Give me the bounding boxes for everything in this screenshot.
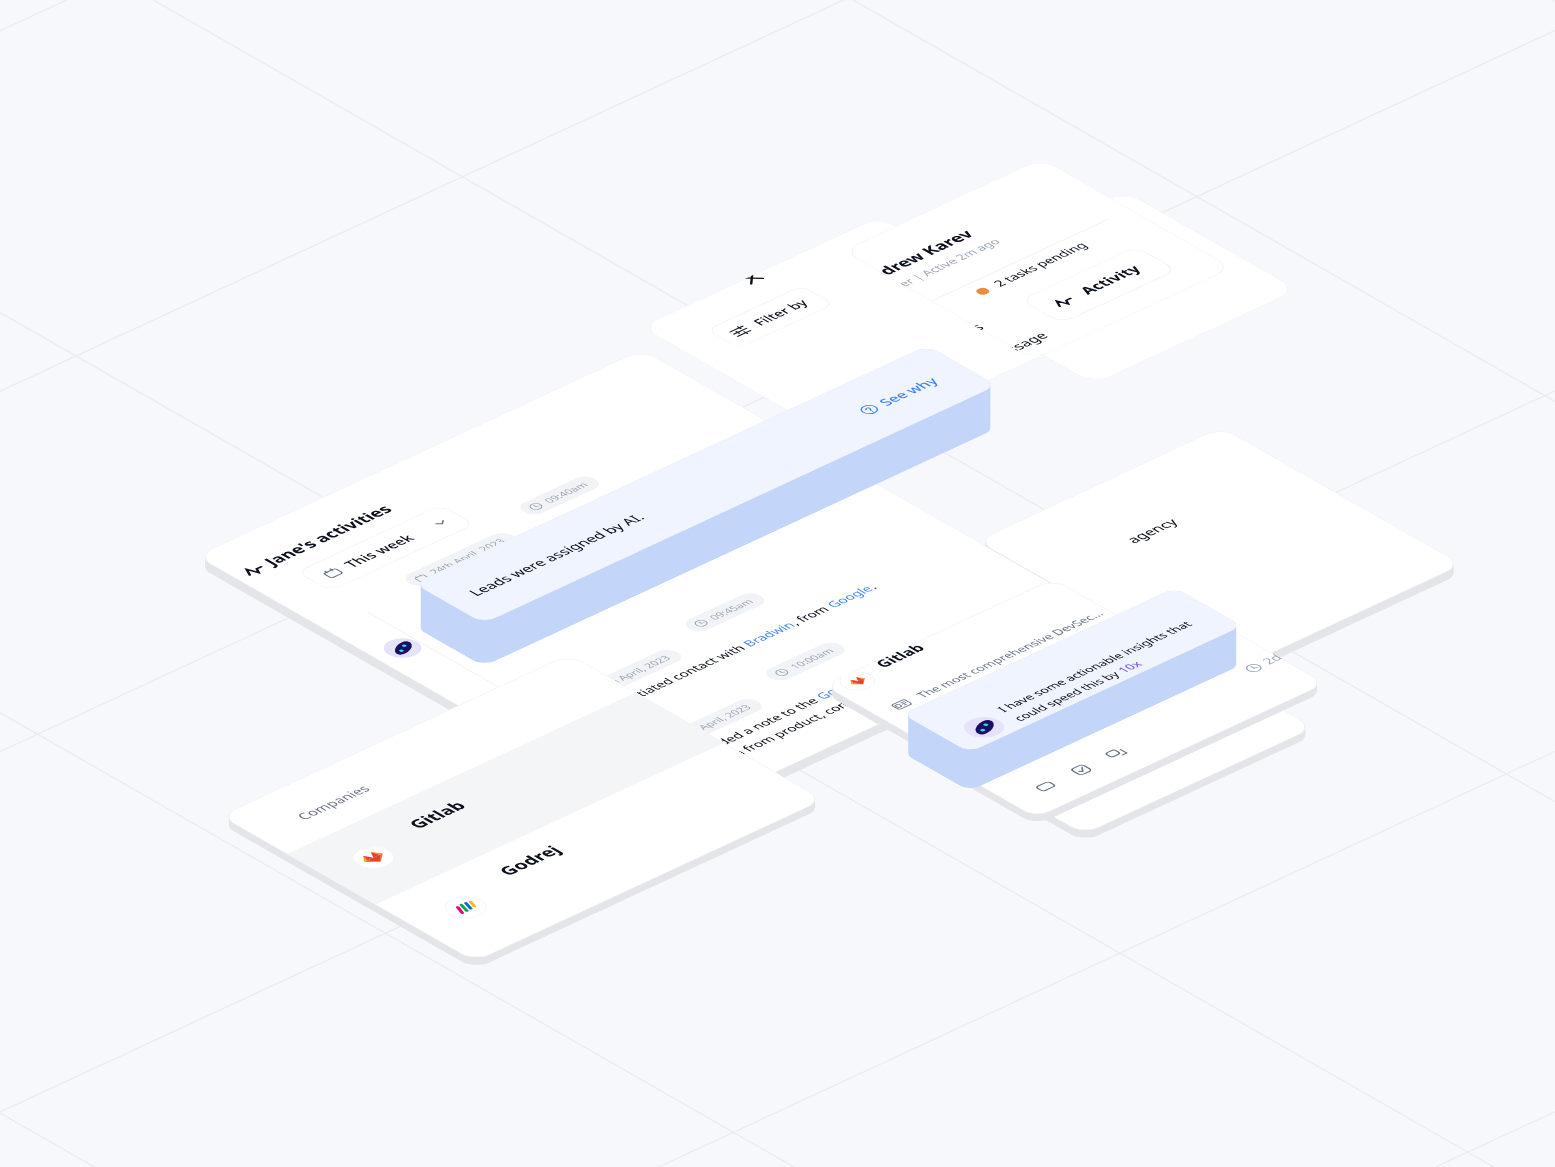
staticText: Andrew Karev	[872, 226, 980, 279]
button[interactable]: Activity	[1020, 246, 1177, 324]
button[interactable]: Task	[1059, 758, 1104, 782]
staticText: Designer | Active 2m ago	[895, 236, 1004, 288]
button[interactable]: 24th April, 2023	[646, 696, 768, 755]
button[interactable]: Filter by	[706, 285, 835, 348]
staticText: Google	[535, 522, 591, 550]
staticText: Leads were assigned by AI.	[464, 511, 650, 599]
staticText: deal.	[852, 660, 898, 683]
staticText: Jane initiated contact with	[590, 641, 753, 718]
staticText: Jane added a note to the	[671, 693, 826, 767]
staticText: 24th April, 2023	[591, 653, 674, 693]
staticText: 09:40am	[540, 480, 592, 505]
button[interactable]: 09:45am	[680, 590, 770, 634]
staticText: 09:45am	[705, 597, 757, 622]
staticText: The most comprehensive DevSec...	[912, 608, 1107, 700]
staticText: 2d	[1258, 652, 1286, 667]
staticText: Progress	[968, 321, 989, 332]
staticText: Google	[811, 674, 867, 702]
staticText: This week	[339, 532, 419, 571]
staticText: 24th April, 2023	[671, 702, 755, 742]
staticText: Chris Gill	[607, 485, 671, 517]
staticText: Bradwin	[738, 619, 800, 649]
staticText: 2 tasks pending	[989, 239, 1092, 289]
staticText: Companies	[292, 782, 375, 822]
staticText: Potential lead from	[425, 541, 550, 601]
staticText: 24th April, 2023	[425, 536, 509, 576]
staticText: Gitlab	[402, 797, 471, 832]
button[interactable]	[287, 692, 724, 905]
staticText: Jane's activities	[258, 501, 399, 569]
button[interactable]: 24th April, 2023	[565, 647, 687, 705]
button[interactable]: Comment	[1094, 742, 1140, 765]
staticText: Godrej	[492, 842, 566, 878]
button[interactable]: 09:40am	[515, 473, 605, 517]
staticText: .	[863, 581, 881, 591]
button[interactable]: 10:00am	[760, 639, 851, 683]
staticText: could speed this by	[1009, 667, 1127, 723]
staticText: Attio	[443, 590, 484, 611]
staticText: with	[576, 508, 621, 531]
staticText: www.gitlab.com	[942, 670, 1040, 717]
button[interactable]: Close	[736, 271, 776, 291]
staticText: Filter by	[748, 296, 813, 328]
staticText: Gitlab	[873, 642, 930, 671]
staticText: 10:00am	[786, 646, 838, 671]
staticText: Google	[822, 583, 878, 610]
staticText: Message	[1005, 329, 1054, 353]
staticText: Activity	[1074, 262, 1146, 297]
staticText: See why	[874, 375, 943, 409]
staticText: I have some actionable insights that	[993, 618, 1196, 714]
staticText: , from	[785, 602, 837, 627]
button[interactable]: Note	[1023, 775, 1068, 798]
staticText: agency	[1121, 515, 1183, 546]
button[interactable]: 24th April, 2023	[400, 530, 522, 589]
staticText: 10x	[1113, 658, 1146, 675]
staticText: Bradwin from product, completely revampe…	[688, 652, 954, 777]
button[interactable]: This week	[296, 505, 475, 591]
